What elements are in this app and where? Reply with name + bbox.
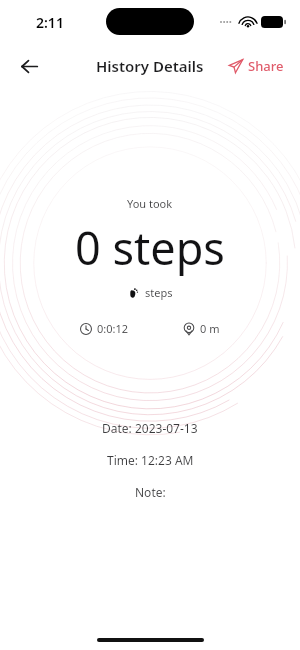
- staticText: 2:11: [36, 13, 64, 32]
- staticText: 0:0:12: [97, 321, 129, 336]
- button[interactable]: Back: [10, 47, 48, 85]
- staticText: You took: [127, 196, 173, 211]
- staticText: Note:: [135, 484, 166, 500]
- button[interactable]: Share: [225, 52, 288, 80]
- staticText: 0 m: [200, 321, 220, 336]
- staticText: 0 steps: [75, 217, 225, 278]
- staticText: Share: [248, 57, 284, 75]
- staticText: History Details: [96, 56, 204, 76]
- staticText: Date: 2023-07-13: [102, 420, 198, 436]
- staticText: Time: 12:23 AM: [107, 452, 194, 468]
- staticText: steps: [145, 285, 173, 300]
